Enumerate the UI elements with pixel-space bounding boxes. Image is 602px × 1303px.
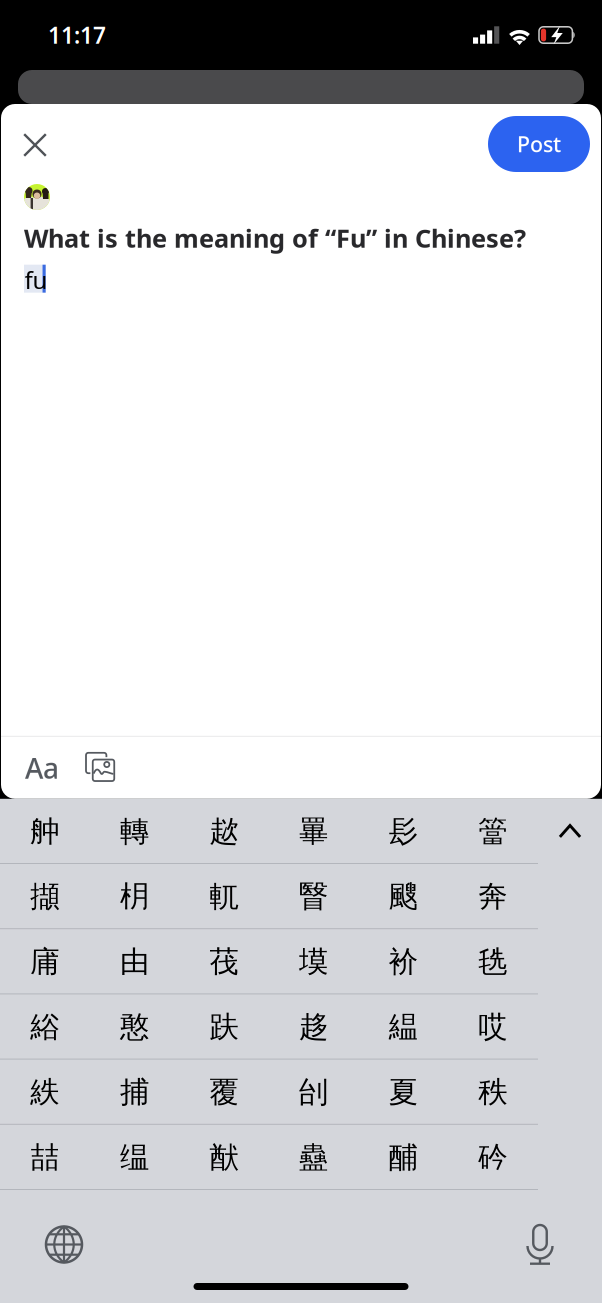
button[interactable]: 瞖 (269, 864, 358, 929)
button[interactable]: 奔 (448, 864, 538, 929)
staticText: 衸 (389, 944, 418, 980)
button[interactable]: 髟 (358, 799, 448, 864)
staticText: 庯 (30, 944, 59, 980)
staticText: Aa (25, 749, 59, 786)
button[interactable]: 擷 (0, 864, 90, 929)
button[interactable]: 軏 (179, 864, 269, 929)
button[interactable]: 紩 (0, 1060, 90, 1125)
staticText: 軏 (209, 879, 238, 915)
button[interactable]: 綌 (0, 994, 90, 1060)
button[interactable]: 趑 (179, 799, 269, 864)
staticText: 猷 (209, 1139, 238, 1175)
staticText: What is the meaning of “Fu” in Chinese? (24, 221, 526, 255)
staticText: 刣 (299, 1074, 328, 1110)
staticText: 夏 (389, 1074, 418, 1110)
button[interactable]: 茷 (179, 929, 269, 994)
staticText: 簹 (478, 813, 507, 849)
staticText: 趍 (299, 1009, 328, 1045)
button[interactable]: 簹 (448, 799, 538, 864)
staticText: 罼 (299, 813, 328, 849)
staticText: 塻 (299, 944, 328, 980)
button[interactable]: 趍 (269, 994, 358, 1060)
button[interactable]: Post (488, 116, 590, 172)
button[interactable]: 庯 (0, 929, 90, 994)
button[interactable]: 蠱 (269, 1125, 358, 1190)
staticText: 由 (120, 944, 149, 980)
staticText: 緼 (389, 1009, 418, 1045)
staticText: 酺 (389, 1139, 418, 1175)
button[interactable]: 猷 (179, 1125, 269, 1190)
staticText: 趑 (209, 813, 238, 849)
staticText: 枂 (120, 879, 149, 915)
staticText: 茷 (209, 944, 238, 980)
button[interactable]: 覆 (179, 1060, 269, 1125)
staticText: 綌 (30, 1009, 59, 1045)
staticText: 缊 (120, 1139, 149, 1175)
staticText: 趺 (209, 1009, 238, 1045)
staticText: 覆 (209, 1074, 238, 1110)
button[interactable]: Hide candidates (538, 799, 602, 864)
button[interactable]: 舯 (0, 799, 90, 864)
staticText: 奔 (478, 879, 507, 915)
button[interactable]: 砛 (448, 1125, 538, 1190)
button[interactable]: 衸 (358, 929, 448, 994)
staticText: 髟 (389, 813, 418, 849)
staticText: 11:17 (48, 20, 106, 50)
staticText: 哎 (478, 1009, 507, 1045)
button[interactable]: Insert image (78, 745, 124, 791)
button[interactable]: 喆 (0, 1125, 90, 1190)
staticText: 瞖 (299, 879, 328, 915)
staticText: 憨 (120, 1009, 149, 1045)
button[interactable]: 缊 (90, 1125, 179, 1190)
staticText: 颼 (389, 879, 418, 915)
staticText: 砛 (478, 1139, 507, 1175)
staticText: 毨 (478, 944, 507, 980)
button[interactable]: Close (13, 123, 57, 167)
button[interactable]: Dictation (509, 1213, 571, 1275)
staticText: 捕 (120, 1074, 149, 1110)
button[interactable]: 緼 (358, 994, 448, 1060)
button[interactable]: 轉 (90, 799, 179, 864)
button[interactable]: Next keyboard (33, 1213, 95, 1275)
staticText: 舯 (30, 813, 59, 849)
staticText: Post (517, 130, 561, 158)
button[interactable]: 趺 (179, 994, 269, 1060)
staticText: 喆 (30, 1139, 59, 1175)
button[interactable]: Text formatting (19, 745, 65, 791)
button[interactable]: 酺 (358, 1125, 448, 1190)
button[interactable]: 罼 (269, 799, 358, 864)
button[interactable]: 哎 (448, 994, 538, 1060)
staticText: 擷 (30, 879, 59, 915)
staticText: 轉 (120, 813, 149, 849)
button[interactable]: 夏 (358, 1060, 448, 1125)
button[interactable]: 颼 (358, 864, 448, 929)
button[interactable]: 憨 (90, 994, 179, 1060)
staticText: 紩 (30, 1074, 59, 1110)
button[interactable]: 由 (90, 929, 179, 994)
button[interactable]: 枂 (90, 864, 179, 929)
button[interactable]: Profile (24, 184, 50, 210)
staticText: fu (24, 264, 47, 296)
button[interactable]: 塻 (269, 929, 358, 994)
button[interactable]: 刣 (269, 1060, 358, 1125)
button[interactable]: 秩 (448, 1060, 538, 1125)
staticText: 蠱 (299, 1139, 328, 1175)
button[interactable]: 毨 (448, 929, 538, 994)
button[interactable]: 捕 (90, 1060, 179, 1125)
staticText: 秩 (478, 1074, 507, 1110)
